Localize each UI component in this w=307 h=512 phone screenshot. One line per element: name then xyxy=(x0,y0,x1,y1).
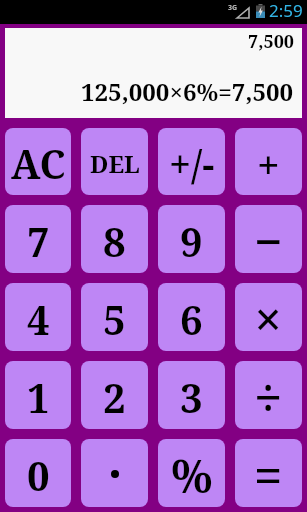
staticText: 2 xyxy=(103,370,126,424)
button[interactable]: 6 xyxy=(158,283,225,351)
staticText: 6 xyxy=(180,292,203,346)
button[interactable]: DEL xyxy=(81,128,148,195)
staticText: 7,500 xyxy=(248,29,294,54)
staticText: % xyxy=(171,444,213,507)
staticText: − xyxy=(254,207,283,273)
button[interactable]: 5 xyxy=(81,283,148,351)
staticText: ÷ xyxy=(254,363,283,429)
button[interactable]: 1 xyxy=(5,361,71,429)
staticText: 8 xyxy=(103,214,126,268)
staticText: 125,000×6%=7,500 xyxy=(81,75,294,108)
button[interactable]: 4 xyxy=(5,283,71,351)
staticText: +/- xyxy=(169,137,215,190)
staticText: 3 xyxy=(180,370,203,424)
button[interactable]: 2 xyxy=(81,361,148,429)
button[interactable]: = xyxy=(235,439,302,507)
staticText: 2:59 xyxy=(269,0,303,22)
staticText: × xyxy=(254,285,283,351)
staticText: 3G xyxy=(228,3,238,13)
staticText: DEL xyxy=(90,147,140,180)
staticText: 5 xyxy=(103,292,126,346)
button[interactable] xyxy=(81,439,148,507)
staticText: 9 xyxy=(180,214,203,268)
button[interactable]: + xyxy=(235,128,302,195)
staticText: + xyxy=(257,137,280,191)
staticText: AC xyxy=(11,137,66,190)
staticText: 1 xyxy=(27,370,50,424)
staticText: = xyxy=(254,441,283,507)
button[interactable]: 9 xyxy=(158,205,225,273)
staticText: 7 xyxy=(27,214,50,268)
staticText: 4 xyxy=(27,292,50,346)
button[interactable]: 7 xyxy=(5,205,71,273)
button[interactable]: % xyxy=(158,439,225,507)
button[interactable]: 3 xyxy=(158,361,225,429)
button[interactable]: ÷ xyxy=(235,361,302,429)
button[interactable]: − xyxy=(235,205,302,273)
button[interactable]: 0 xyxy=(5,439,71,507)
button[interactable]: +/- xyxy=(158,128,225,195)
button[interactable]: AC xyxy=(5,128,71,195)
button[interactable]: × xyxy=(235,283,302,351)
button[interactable]: 8 xyxy=(81,205,148,273)
staticText: 0 xyxy=(27,448,50,502)
